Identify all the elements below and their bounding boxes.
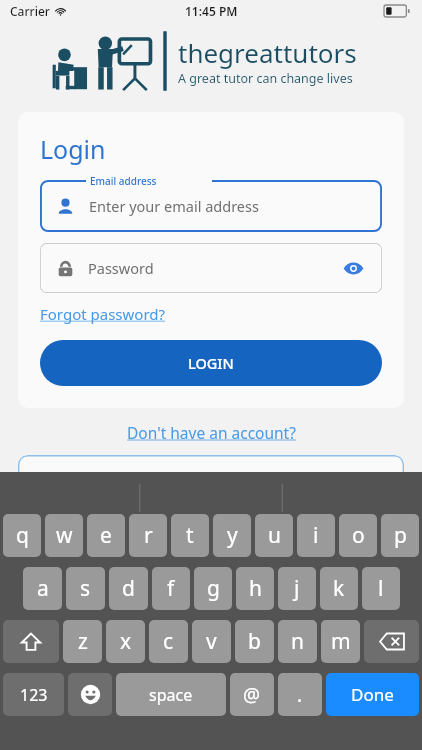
button[interactable]: j <box>278 567 316 610</box>
staticText: f <box>167 574 175 603</box>
button[interactable]: i <box>297 514 335 557</box>
staticText: m <box>331 627 351 656</box>
button[interactable]: d <box>109 567 148 610</box>
button[interactable]: h <box>236 567 274 610</box>
staticText: 123 <box>20 684 48 706</box>
staticText: o <box>352 521 365 550</box>
staticText: g <box>207 574 220 603</box>
button[interactable]: e <box>87 514 125 557</box>
staticText: A great tutor can change lives <box>178 70 353 87</box>
button[interactable]: g <box>194 567 232 610</box>
button[interactable]: q <box>3 514 41 557</box>
staticText: c <box>163 627 174 656</box>
button[interactable]: . <box>278 673 322 716</box>
button[interactable]: space <box>116 673 226 716</box>
staticText: d <box>122 574 135 603</box>
button[interactable]: v <box>192 620 231 663</box>
button[interactable]: o <box>339 514 377 557</box>
button[interactable]: Forgot password? <box>40 304 166 324</box>
staticText: p <box>394 521 407 550</box>
button[interactable]: @ <box>230 673 274 716</box>
staticText: x <box>120 627 132 656</box>
button[interactable]: m <box>321 620 360 663</box>
button[interactable]: Sign up <box>18 455 404 495</box>
staticText: z <box>78 627 88 656</box>
button[interactable]: Shift <box>3 620 59 663</box>
staticText: b <box>248 627 261 656</box>
staticText: u <box>268 521 281 550</box>
button[interactable]: p <box>381 514 419 557</box>
button[interactable]: y <box>213 514 251 557</box>
button[interactable]: Emoji <box>68 673 112 716</box>
staticText: Done <box>351 683 394 706</box>
staticText: s <box>80 574 91 603</box>
staticText: 11:45 PM <box>185 3 238 19</box>
staticText: h <box>249 574 262 603</box>
staticText: Password <box>88 258 154 278</box>
button[interactable]: n <box>278 620 317 663</box>
staticText: . <box>297 682 303 708</box>
staticText: k <box>333 574 345 603</box>
button[interactable]: k <box>320 567 358 610</box>
button[interactable]: LOGIN <box>40 340 382 386</box>
button[interactable]: s <box>66 567 105 610</box>
staticText: Enter your email address <box>89 196 259 216</box>
staticText: r <box>144 521 153 550</box>
button[interactable]: w <box>45 514 83 557</box>
staticText: v <box>206 627 217 656</box>
staticText: t <box>186 521 194 550</box>
staticText: a <box>37 574 49 603</box>
staticText: Email address <box>90 174 157 188</box>
staticText: @ <box>243 682 261 708</box>
staticText: n <box>291 627 304 656</box>
button[interactable]: z <box>63 620 102 663</box>
button[interactable]: x <box>106 620 145 663</box>
staticText: space <box>149 684 193 706</box>
staticText: Sign up <box>185 469 238 489</box>
button[interactable]: l <box>362 567 400 610</box>
staticText: y <box>227 521 238 550</box>
staticText: thegreattutors <box>178 35 357 70</box>
button[interactable]: Don't have an account? <box>127 422 296 443</box>
button[interactable]: Backspace <box>364 620 419 663</box>
button[interactable]: c <box>149 620 188 663</box>
button[interactable]: r <box>129 514 167 557</box>
button[interactable]: f <box>152 567 190 610</box>
staticText: i <box>313 521 319 550</box>
staticText: Carrier <box>10 3 50 19</box>
button[interactable]: a <box>23 567 62 610</box>
button[interactable]: b <box>235 620 274 663</box>
staticText: e <box>100 521 112 550</box>
staticText: q <box>16 521 29 550</box>
button[interactable]: u <box>255 514 293 557</box>
staticText: j <box>294 574 300 603</box>
button[interactable]: Password <box>40 243 382 293</box>
button[interactable]: Done <box>326 673 419 716</box>
button[interactable]: t <box>171 514 209 557</box>
button[interactable]: 123 <box>3 673 64 716</box>
staticText: Login <box>40 132 106 166</box>
staticText: LOGIN <box>188 353 234 373</box>
button[interactable]: Email address <box>40 180 382 232</box>
staticText: l <box>378 574 384 603</box>
button[interactable]: Show password <box>338 253 368 283</box>
staticText: w <box>56 521 73 550</box>
